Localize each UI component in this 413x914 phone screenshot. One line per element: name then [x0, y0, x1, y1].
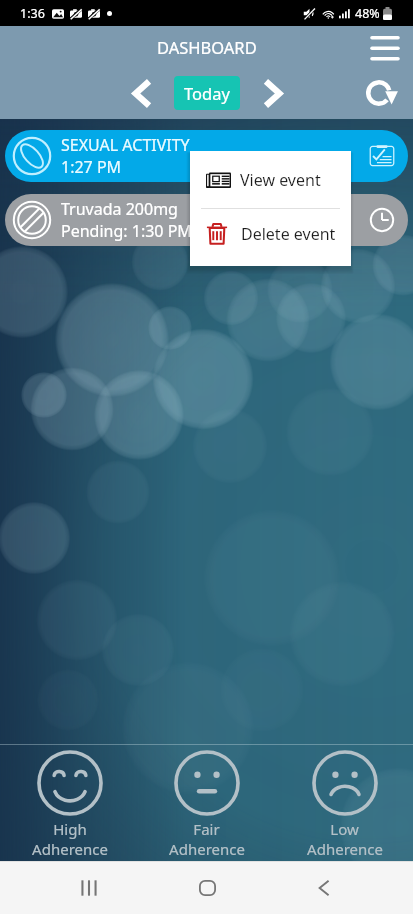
- staticText: Low: [330, 819, 359, 839]
- staticText: Today: [184, 82, 230, 104]
- staticText: View event: [240, 169, 321, 191]
- button[interactable]: Next day: [255, 75, 291, 111]
- staticText: DASHBOARD: [157, 36, 257, 58]
- button[interactable]: Back: [296, 861, 352, 914]
- button[interactable]: Recents: [61, 861, 117, 914]
- staticText: High: [53, 819, 87, 839]
- button[interactable]: Menu: [365, 27, 405, 67]
- button[interactable]: Snooze: [362, 200, 402, 240]
- staticText: Delete event: [241, 223, 336, 245]
- button[interactable]: Log activity: [362, 136, 402, 176]
- staticText: SEXUAL ACTIVITY: [61, 134, 190, 156]
- staticText: 48%: [355, 5, 380, 22]
- button[interactable]: SEXUAL ACTIVITY: [5, 130, 408, 182]
- staticText: Adherence: [169, 839, 245, 859]
- button[interactable]: Today: [174, 76, 240, 110]
- staticText: 1:27 PM: [61, 156, 122, 178]
- button[interactable]: Low: [276, 744, 413, 859]
- staticText: Fair: [193, 819, 220, 839]
- staticText: Pending: 1:30 PM: [61, 220, 192, 242]
- staticText: Truvada 200mg: [61, 198, 178, 220]
- button[interactable]: View event: [190, 151, 351, 208]
- button[interactable]: Previous day: [123, 75, 159, 111]
- button[interactable]: Delete event: [190, 209, 351, 259]
- staticText: Adherence: [307, 839, 383, 859]
- staticText: Adherence: [32, 839, 108, 859]
- button[interactable]: Home: [179, 861, 235, 914]
- staticText: 1:36: [20, 5, 45, 22]
- button[interactable]: Fair: [138, 744, 275, 859]
- button[interactable]: Refresh: [363, 75, 399, 111]
- button[interactable]: Truvada 200mg: [5, 194, 408, 246]
- button[interactable]: High: [1, 744, 138, 859]
